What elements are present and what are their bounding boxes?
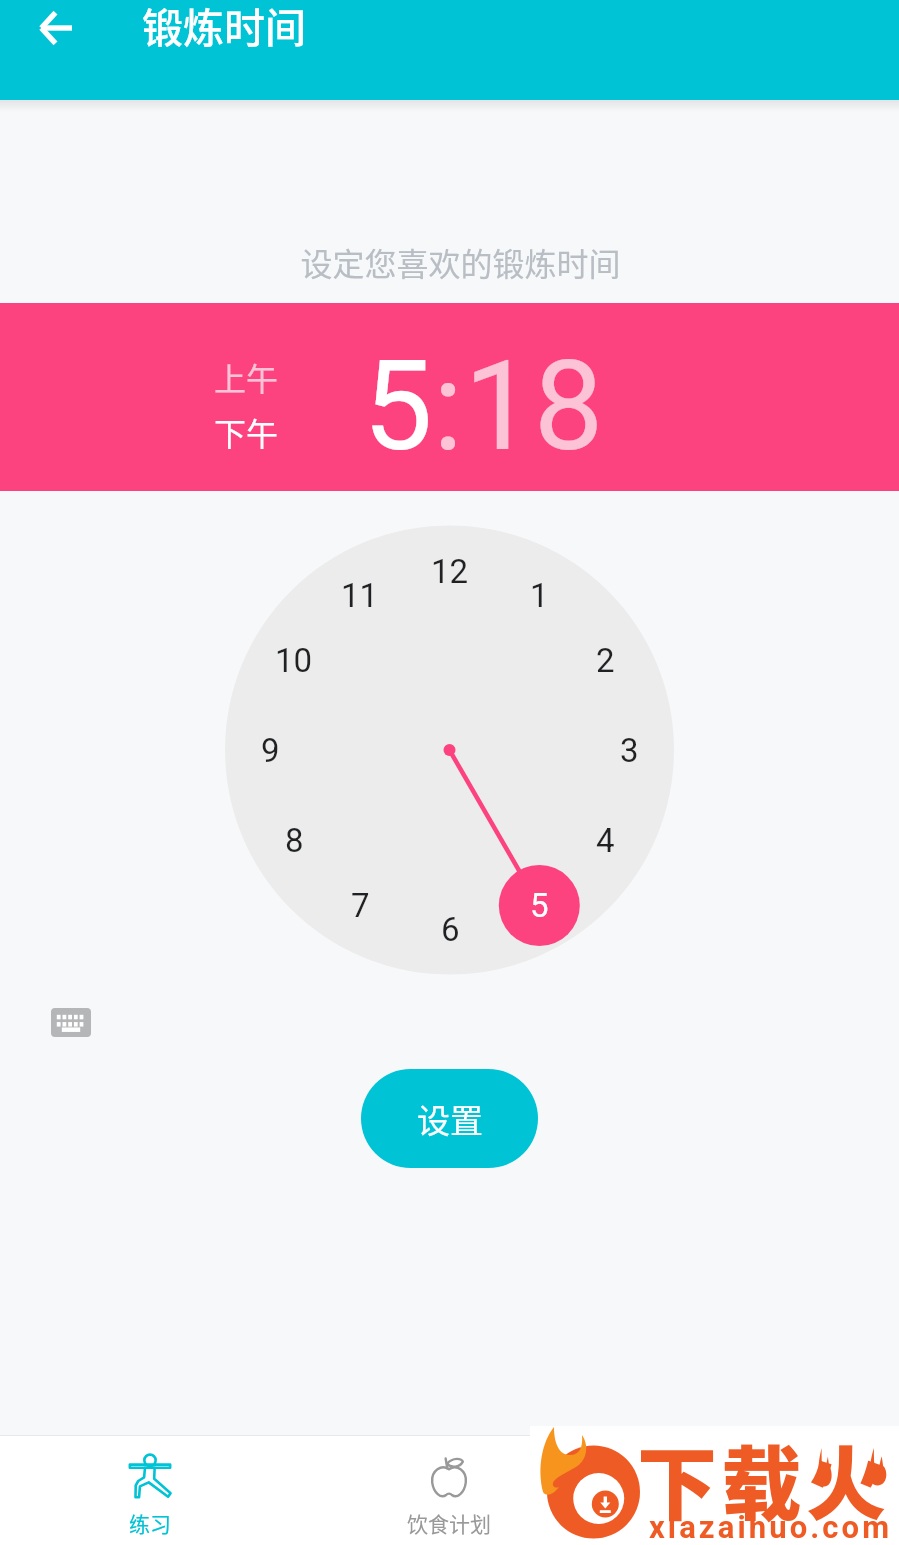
button[interactable]: 上午 (211, 354, 281, 394)
button[interactable]: 4 (575, 810, 635, 870)
staticText: 11 (341, 576, 379, 615)
button[interactable]: Switch to keyboard input (51, 1008, 91, 1037)
staticText: 3 (620, 731, 639, 770)
staticText: 10 (275, 641, 313, 680)
staticText: 18 (464, 334, 604, 479)
staticText: 设定您喜欢的锻炼时间 (11, 239, 899, 285)
staticText: 设置 (417, 1095, 483, 1143)
button[interactable]: Back (27, 0, 83, 56)
staticText: : (433, 334, 464, 479)
staticText: 5 (530, 886, 549, 925)
staticText: 锻炼时间 (142, 0, 306, 54)
staticText: 饮食计划 (407, 1508, 491, 1538)
staticText: 5 (363, 334, 433, 479)
button[interactable]: 10 (264, 630, 324, 690)
staticText: 1 (530, 576, 549, 615)
staticText: 7 (351, 886, 370, 925)
staticText: 12 (431, 552, 469, 591)
button[interactable]: 6 (420, 899, 480, 959)
button[interactable]: 下午 (211, 409, 281, 449)
staticText: 9 (261, 731, 280, 770)
button[interactable]: 11 (330, 565, 390, 625)
button[interactable]: 18 (464, 334, 604, 479)
button[interactable]: 3 (599, 720, 659, 780)
staticText: 练习 (129, 1508, 171, 1538)
staticText: 我的 (728, 1508, 770, 1538)
staticText: 下载火 (637, 1420, 891, 1536)
button[interactable]: 练习 (0, 1436, 299, 1545)
button[interactable]: 12 (420, 541, 480, 601)
button[interactable]: 5 (509, 875, 569, 935)
button[interactable]: 设置 (361, 1069, 538, 1168)
staticText: 上午 (214, 354, 279, 394)
staticText: 6 (441, 910, 460, 949)
button[interactable]: 饮食计划 (299, 1436, 599, 1545)
staticText: 下午 (214, 409, 279, 449)
button[interactable]: 2 (575, 630, 635, 690)
button[interactable]: 5 (363, 334, 433, 479)
staticText: 8 (285, 821, 304, 860)
button[interactable]: 7 (330, 875, 390, 935)
staticText: 2 (596, 641, 615, 680)
button[interactable]: 1 (509, 565, 569, 625)
button[interactable]: 9 (240, 720, 300, 780)
button[interactable]: 8 (264, 810, 324, 870)
staticText: 4 (596, 821, 615, 860)
button[interactable]: 我的 (599, 1436, 899, 1545)
staticText: xiazaihuo.com (649, 1509, 893, 1545)
